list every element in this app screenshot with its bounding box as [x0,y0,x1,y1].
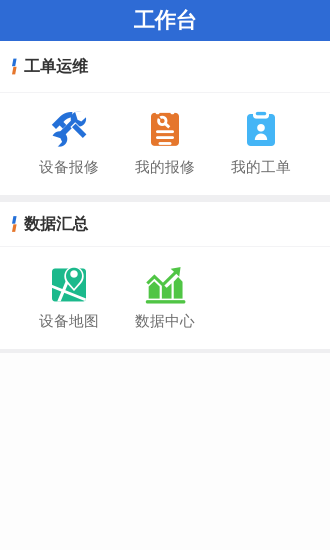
staticText: 我的工单 [231,158,291,176]
staticText: 数据中心 [135,312,195,330]
button[interactable]: 设备地图 [21,247,117,349]
staticText: 工单运维 [24,57,88,76]
staticText: 工作台 [133,7,196,34]
staticText: 我的报修 [135,158,195,176]
button[interactable]: 数据中心 [117,247,213,349]
staticText: 设备报修 [39,158,99,176]
staticText: 数据汇总 [24,214,88,234]
button[interactable]: 设备报修 [21,93,117,195]
staticText: 设备地图 [39,312,99,330]
button[interactable]: 我的工单 [213,93,309,195]
button[interactable]: 我的报修 [117,93,213,195]
